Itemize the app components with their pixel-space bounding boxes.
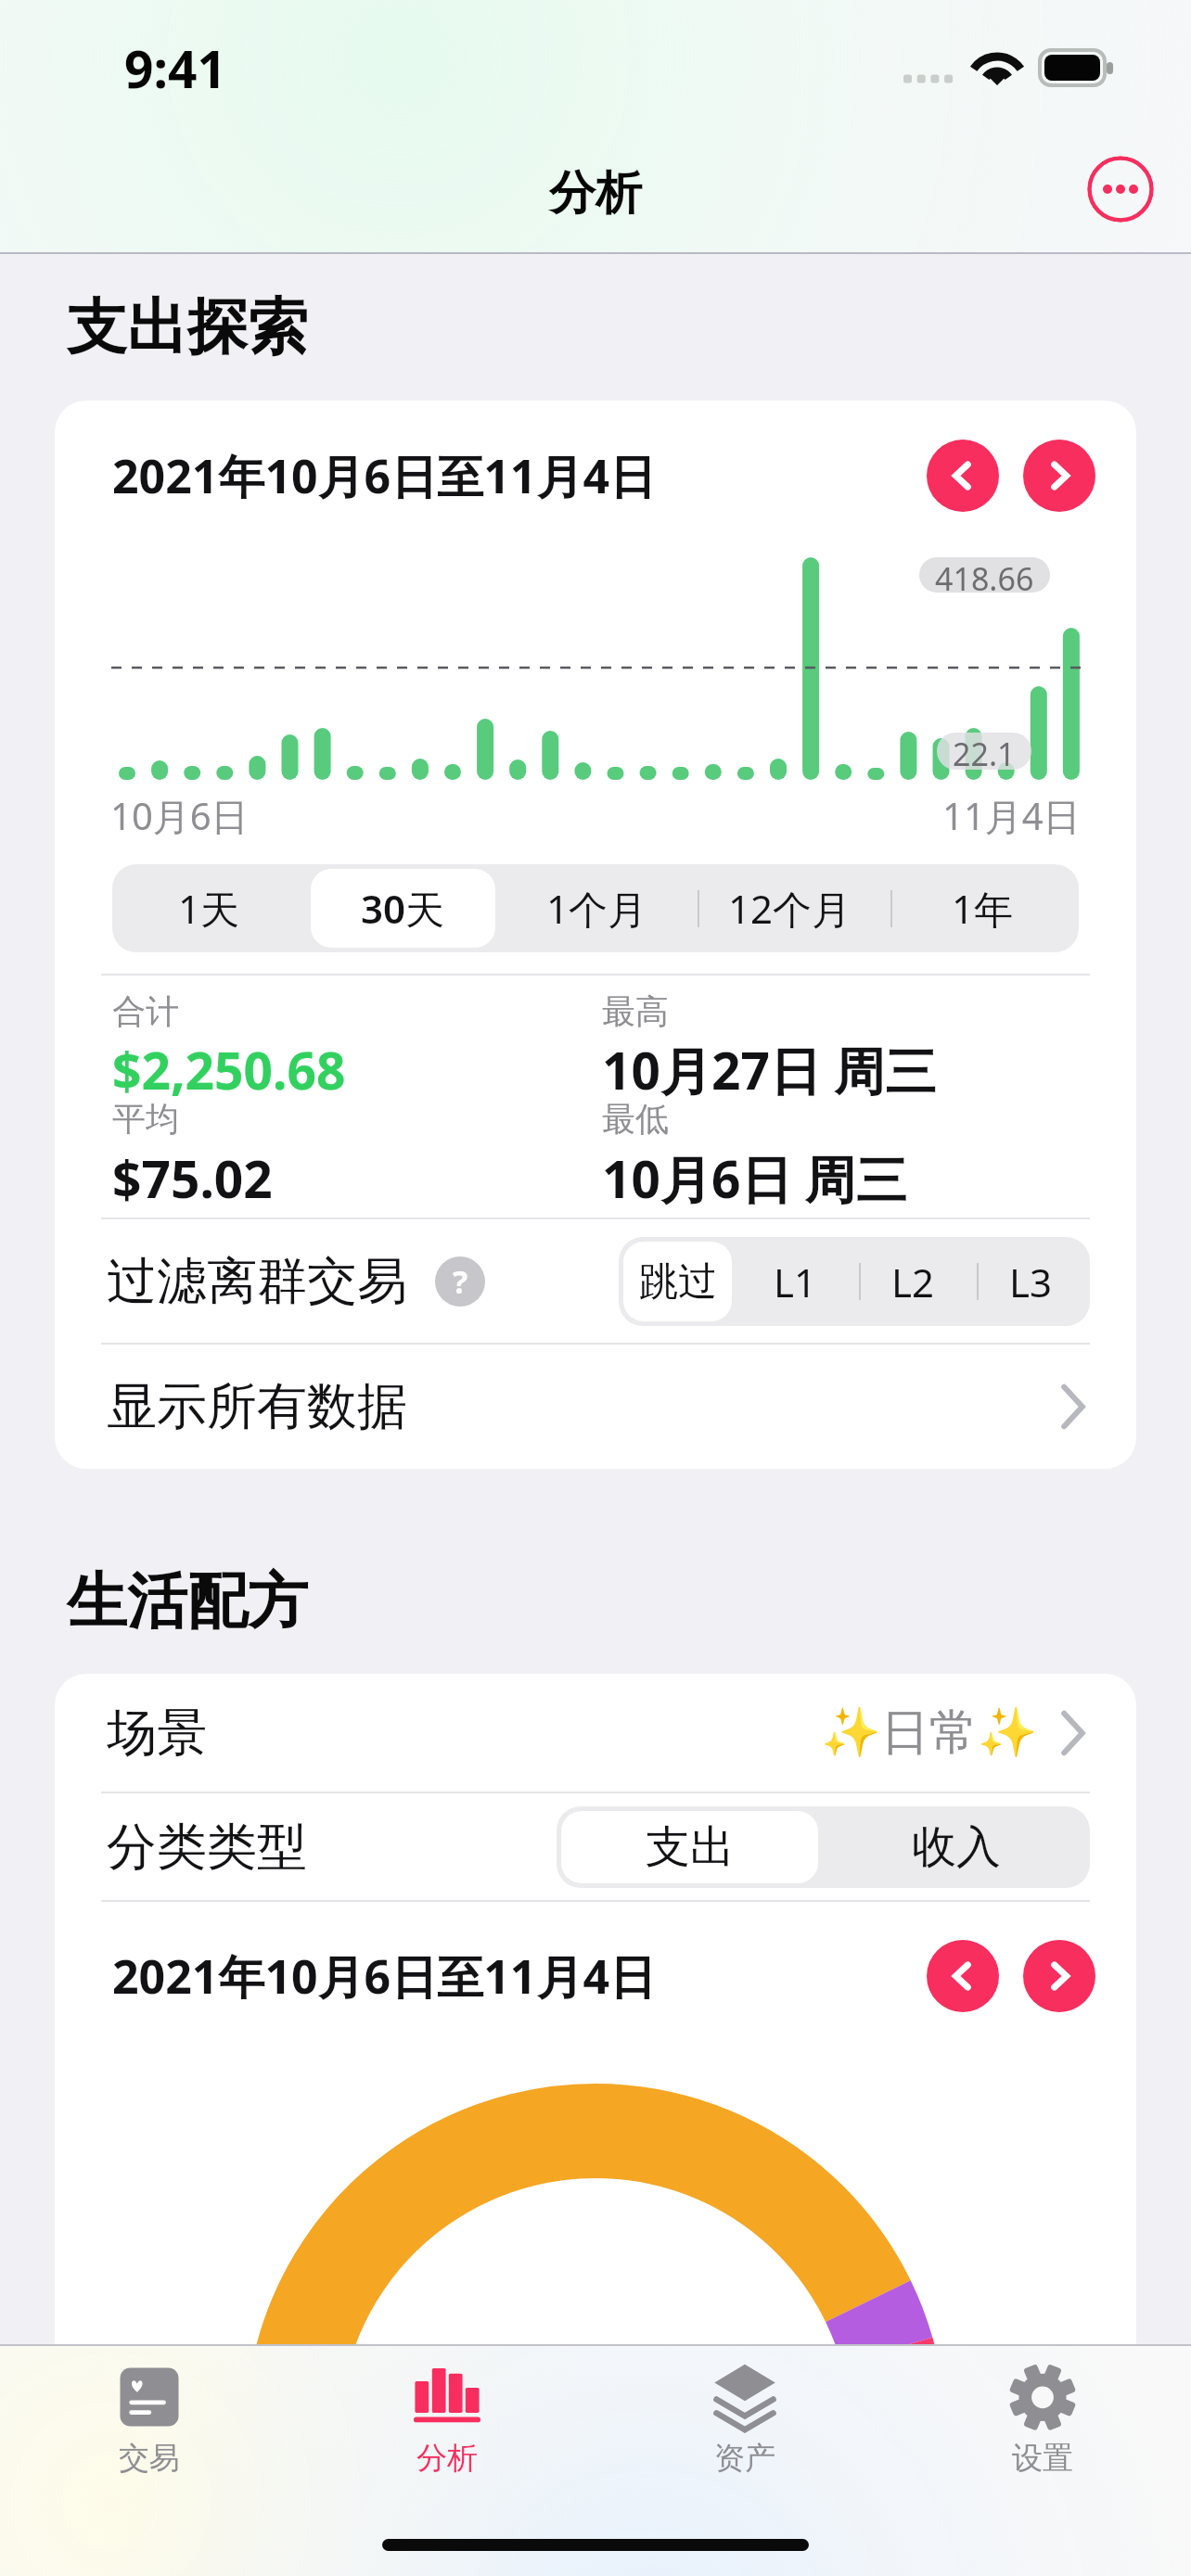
staticText: $2,250.68 xyxy=(112,1035,346,1104)
staticText: 418.66 xyxy=(935,557,1034,593)
button[interactable]: 收入 xyxy=(827,1811,1085,1883)
staticText: ✨日常✨ xyxy=(821,1702,1038,1764)
staticText: 最低 xyxy=(602,1098,669,1140)
staticText: 显示所有数据 xyxy=(107,1375,407,1438)
button[interactable]: 资产 xyxy=(595,2344,893,2493)
staticText: 9:41 xyxy=(124,33,226,103)
button[interactable]: L1 xyxy=(741,1242,850,1321)
button[interactable]: 12个月 xyxy=(698,869,881,948)
staticText: 场景 xyxy=(107,1702,207,1765)
staticText: 交易 xyxy=(119,2439,180,2478)
staticText: 2021年10月6日至11月4日 xyxy=(112,444,656,507)
button[interactable]: Previous period xyxy=(927,440,999,512)
staticText: L3 xyxy=(1009,1256,1053,1308)
staticText: 10月6日 xyxy=(110,790,249,841)
staticText: 生活配方 xyxy=(67,1563,308,1639)
staticText: 设置 xyxy=(1012,2439,1073,2478)
button[interactable]: 分析 xyxy=(298,2344,595,2493)
staticText: 平均 xyxy=(112,1098,179,1140)
staticText: 支出探索 xyxy=(67,289,308,365)
button[interactable]: 1个月 xyxy=(505,869,688,948)
button[interactable]: 跳过 xyxy=(623,1242,732,1321)
button[interactable]: Next period xyxy=(1023,440,1095,512)
staticText: 1个月 xyxy=(546,882,647,935)
staticText: 最高 xyxy=(602,990,669,1032)
button[interactable]: L2 xyxy=(859,1242,967,1321)
staticText: 22.1 xyxy=(953,733,1016,770)
staticText: 12个月 xyxy=(728,882,852,935)
button[interactable]: Previous period xyxy=(927,1940,999,2012)
staticText: 10月6日 周三 xyxy=(602,1143,907,1213)
staticText: 过滤离群交易 xyxy=(107,1250,407,1313)
staticText: 1年 xyxy=(952,882,1014,935)
staticText: 收入 xyxy=(912,1819,1001,1875)
staticText: 资产 xyxy=(714,2439,775,2478)
button[interactable]: 支出 xyxy=(561,1811,818,1883)
staticText: ? xyxy=(453,1260,468,1303)
staticText: L2 xyxy=(891,1256,935,1308)
staticText: 10月27日 周三 xyxy=(602,1035,937,1104)
button[interactable]: 交易 xyxy=(0,2344,298,2493)
staticText: 跳过 xyxy=(639,1257,717,1307)
staticText: 2021年10月6日至11月4日 xyxy=(112,1945,656,2008)
staticText: 合计 xyxy=(112,990,179,1032)
staticText: 分析 xyxy=(416,2439,478,2478)
button[interactable]: 显示所有数据 xyxy=(55,1345,1136,1469)
button[interactable]: Next period xyxy=(1023,1940,1095,2012)
button[interactable]: 1天 xyxy=(117,869,301,948)
button[interactable]: 30天 xyxy=(311,869,495,948)
staticText: 分类类型 xyxy=(107,1816,307,1879)
staticText: 1天 xyxy=(178,882,240,935)
staticText: 11月4日 xyxy=(942,790,1081,841)
staticText: L1 xyxy=(774,1256,817,1308)
staticText: $75.02 xyxy=(112,1143,273,1213)
button[interactable]: L3 xyxy=(977,1242,1085,1321)
button[interactable]: Help xyxy=(435,1256,485,1307)
staticText: 30天 xyxy=(361,882,445,935)
staticText: 支出 xyxy=(646,1819,735,1875)
button[interactable]: 场景 xyxy=(55,1674,1136,1792)
button[interactable]: 1年 xyxy=(890,869,1074,948)
staticText: 分析 xyxy=(549,164,642,223)
button[interactable]: More options xyxy=(1087,156,1154,223)
button[interactable]: 设置 xyxy=(893,2344,1191,2493)
